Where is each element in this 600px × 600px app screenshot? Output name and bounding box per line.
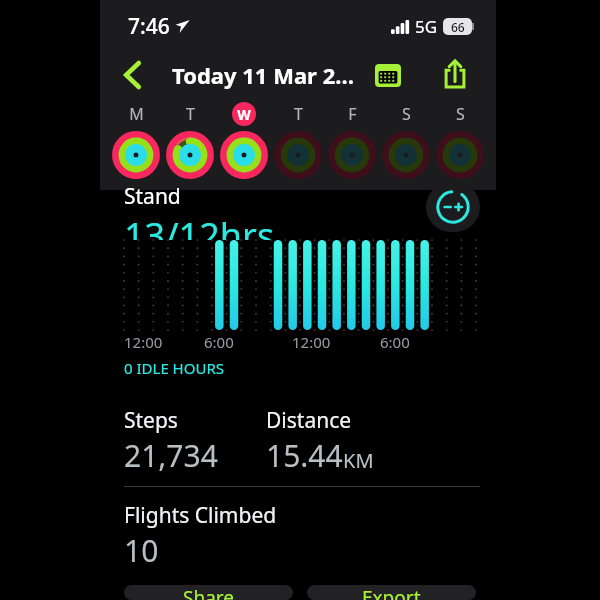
- button[interactable]: M: [112, 102, 160, 126]
- staticText: 13/12hrs: [124, 211, 275, 240]
- staticText: Distance: [266, 406, 352, 435]
- button[interactable]: Share: [124, 585, 293, 600]
- staticText: Today 11 Mar 2…: [172, 60, 355, 90]
- button[interactable]: F: [328, 102, 376, 126]
- button[interactable]: Calendar: [371, 58, 405, 92]
- button[interactable]: Share: [436, 56, 474, 94]
- button[interactable]: Stand details: [426, 182, 480, 232]
- staticText: 10: [124, 530, 159, 571]
- staticText: 7:46: [128, 12, 170, 41]
- staticText: S: [402, 103, 411, 125]
- button[interactable]: [274, 130, 322, 180]
- button[interactable]: W: [220, 102, 268, 126]
- staticText: S: [456, 103, 465, 125]
- staticText: W: [237, 105, 251, 124]
- staticText: F: [348, 103, 357, 125]
- staticText: 15.44: [266, 435, 343, 476]
- staticText: T: [186, 103, 195, 125]
- staticText: KM: [343, 447, 374, 474]
- button[interactable]: Back: [112, 55, 152, 95]
- staticText: Steps: [124, 406, 178, 435]
- staticText: M: [129, 103, 144, 125]
- button[interactable]: S: [382, 102, 430, 126]
- staticText: Flights Climbed: [124, 501, 277, 530]
- staticText: 66: [451, 19, 465, 35]
- staticText: 6:00: [204, 332, 234, 352]
- staticText: 21,734: [124, 435, 218, 476]
- button[interactable]: T: [166, 102, 214, 126]
- button[interactable]: [382, 130, 430, 180]
- staticText: 6:00: [380, 332, 410, 352]
- staticText: T: [294, 103, 303, 125]
- button[interactable]: [220, 130, 268, 180]
- staticText: Share: [183, 585, 235, 600]
- staticText: Export: [362, 585, 421, 600]
- button[interactable]: [166, 130, 214, 180]
- staticText: 0 IDLE HOURS: [124, 358, 224, 378]
- staticText: 12:00: [124, 332, 163, 352]
- staticText: 5G: [415, 15, 438, 38]
- button[interactable]: Export: [307, 585, 476, 600]
- button[interactable]: T: [274, 102, 322, 126]
- button[interactable]: [112, 130, 160, 180]
- button[interactable]: [436, 130, 484, 180]
- button[interactable]: S: [436, 102, 484, 126]
- staticText: Stand: [124, 182, 181, 211]
- staticText: 12:00: [292, 332, 331, 352]
- button[interactable]: [328, 130, 376, 180]
